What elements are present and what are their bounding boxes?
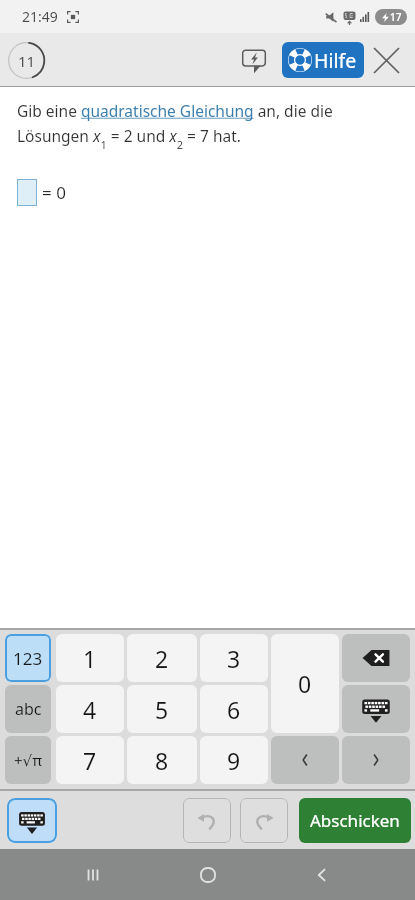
staticText: 2 (155, 643, 169, 674)
staticText: 5 (155, 694, 169, 725)
button[interactable]: Redo (240, 798, 288, 843)
button[interactable]: 4 (56, 685, 124, 733)
button[interactable]: Abschicken (299, 798, 411, 843)
button[interactable]: 123 (5, 634, 51, 682)
staticText: Hilfe (314, 47, 357, 74)
button[interactable]: Answer input field (17, 179, 37, 206)
staticText: = 0 (42, 181, 66, 204)
staticText: Abschicken (310, 809, 400, 832)
staticText: 21:49 (22, 7, 58, 26)
button[interactable]: 1 (56, 634, 124, 682)
button[interactable]: Hide keyboard (342, 685, 410, 733)
staticText: 3 (227, 643, 241, 674)
button[interactable]: Report problem (235, 41, 273, 79)
staticText: 7 (83, 745, 97, 776)
staticText: 17 (390, 10, 402, 24)
staticText: 123 (13, 647, 43, 670)
staticText: 0 (298, 668, 312, 699)
button[interactable]: Toggle keyboard (7, 798, 57, 843)
staticText: 11 (18, 51, 36, 71)
button[interactable]: Undo (183, 798, 231, 843)
button[interactable]: Back (300, 853, 344, 897)
button[interactable]: abc (5, 685, 51, 733)
button[interactable]: 9 (200, 736, 268, 784)
staticText: abc (15, 698, 42, 720)
button[interactable]: Hilfe (282, 42, 364, 78)
button[interactable]: +√π (5, 736, 51, 784)
button[interactable]: 8 (127, 736, 197, 784)
staticText: 9 (227, 745, 241, 776)
button[interactable]: Progress 11 of steps (8, 42, 45, 79)
button[interactable]: Next (342, 736, 410, 784)
staticText: Gib eine quadratische Gleichung an, die … (17, 100, 377, 152)
button[interactable]: Backspace (342, 634, 410, 682)
staticText: +√π (14, 750, 42, 770)
button[interactable]: 5 (127, 685, 197, 733)
staticText: 8 (155, 745, 169, 776)
staticText: 4 (83, 694, 97, 725)
button[interactable]: 2 (127, 634, 197, 682)
button[interactable]: Previous (271, 736, 339, 784)
button[interactable]: 3 (200, 634, 268, 682)
button[interactable]: Recent apps (71, 853, 115, 897)
staticText: 6 (227, 694, 241, 725)
button[interactable]: 6 (200, 685, 268, 733)
button[interactable]: 7 (56, 736, 124, 784)
staticText: 1 (83, 643, 97, 674)
button[interactable]: Home (186, 853, 230, 897)
button[interactable]: 0 (271, 634, 339, 733)
button[interactable]: Close (367, 41, 405, 79)
